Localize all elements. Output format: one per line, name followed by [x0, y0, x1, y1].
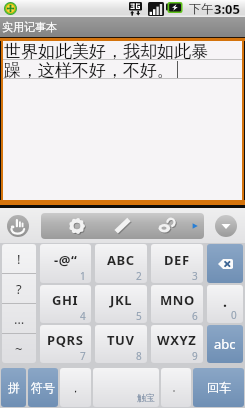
button[interactable]: DEF	[151, 244, 203, 283]
staticText: TUV	[107, 331, 135, 349]
staticText: ABC	[107, 251, 135, 269]
button[interactable]: Weibo	[157, 216, 177, 236]
staticText: 躁，这样不好，不好。	[4, 60, 174, 79]
button[interactable]: Settings	[67, 216, 87, 236]
staticText: PQRS	[47, 331, 84, 349]
staticText: ，	[70, 381, 81, 395]
staticText: -@“	[54, 251, 78, 269]
button[interactable]: 。	[161, 368, 191, 407]
button[interactable]: Handwriting	[112, 216, 132, 236]
staticText: 实用记事本	[2, 20, 57, 34]
button[interactable]: Backspace	[207, 244, 243, 283]
button[interactable]: 符号	[28, 368, 58, 407]
button[interactable]: More options	[215, 215, 237, 237]
button[interactable]: MNO	[151, 285, 203, 323]
button[interactable]: 拼	[1, 368, 26, 407]
staticText: 8	[136, 349, 142, 363]
button[interactable]: ?	[2, 274, 36, 303]
button[interactable]: .	[207, 285, 243, 323]
staticText: !	[17, 250, 21, 268]
staticText: 。	[172, 382, 181, 393]
staticText: WXYZ	[157, 331, 197, 349]
staticText: 1	[80, 269, 86, 283]
staticText: …	[14, 310, 25, 328]
staticText: 5	[136, 309, 142, 323]
staticText: 7	[80, 349, 86, 363]
button[interactable]: Switch to abc	[207, 325, 243, 363]
staticText: abc	[214, 335, 236, 353]
button[interactable]: ABC	[95, 244, 147, 283]
staticText: MNO	[160, 291, 195, 309]
button[interactable]: -@“	[40, 244, 91, 283]
staticText: 拼	[8, 380, 20, 395]
button[interactable]: 触宝	[93, 368, 159, 407]
staticText: 触宝	[137, 392, 155, 403]
staticText: JKL	[110, 291, 133, 309]
staticText: GHI	[52, 291, 79, 309]
staticText: .	[223, 292, 227, 311]
button[interactable]: …	[2, 304, 36, 333]
button[interactable]: WXYZ	[151, 325, 203, 363]
button[interactable]: ，	[60, 368, 91, 407]
staticText: 0	[231, 308, 237, 322]
button[interactable]: !	[2, 244, 36, 273]
button[interactable]: PQRS	[40, 325, 91, 363]
staticText: 9	[192, 349, 198, 363]
staticText: 回车	[207, 380, 231, 395]
button[interactable]: JKL	[95, 285, 147, 323]
button[interactable]: Hide keyboard	[7, 215, 29, 237]
staticText: ~	[15, 340, 23, 358]
staticText: 下午	[189, 1, 213, 16]
button[interactable]: ~	[2, 334, 36, 363]
staticText: 符号	[31, 380, 55, 395]
staticText: 6	[192, 309, 198, 323]
staticText: ?	[16, 280, 22, 298]
staticText: 4	[80, 309, 86, 323]
other: Notification	[4, 2, 17, 15]
staticText: 2	[136, 269, 142, 283]
staticText: 3	[192, 269, 198, 283]
staticText: DEF	[164, 251, 190, 269]
button[interactable]: TUV	[95, 325, 147, 363]
button[interactable]: 回车	[193, 368, 244, 407]
staticText: 3:05	[214, 0, 240, 17]
staticText: 世界如此美好，我却如此暴	[4, 41, 208, 60]
button[interactable]: GHI	[40, 285, 91, 323]
